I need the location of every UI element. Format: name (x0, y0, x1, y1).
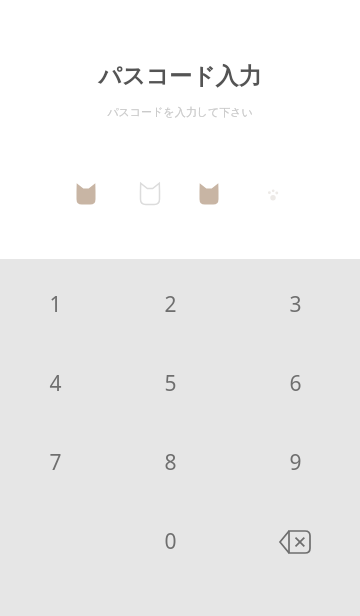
button[interactable]: 4 (0, 344, 110, 423)
staticText: パスコード入力 (0, 62, 360, 91)
button[interactable]: 1 (0, 265, 110, 344)
staticText: 4 (49, 369, 62, 398)
staticText: 3 (289, 290, 302, 319)
button[interactable]: Backspace (230, 502, 360, 581)
staticText: パスコードを入力して下さい (0, 105, 360, 119)
staticText: 8 (164, 448, 177, 477)
staticText: 6 (289, 369, 302, 398)
button[interactable]: 5 (110, 344, 230, 423)
button[interactable]: 2 (110, 265, 230, 344)
staticText: 7 (49, 448, 62, 477)
button[interactable]: 6 (230, 344, 360, 423)
staticText: 9 (289, 448, 302, 477)
button[interactable]: 8 (110, 423, 230, 502)
button[interactable]: 9 (230, 423, 360, 502)
staticText: 5 (164, 369, 177, 398)
staticText: 2 (164, 290, 177, 319)
staticText: 0 (164, 527, 177, 556)
button[interactable]: 7 (0, 423, 110, 502)
button[interactable]: 0 (110, 502, 230, 581)
staticText: 1 (49, 290, 62, 319)
button[interactable]: 3 (230, 265, 360, 344)
